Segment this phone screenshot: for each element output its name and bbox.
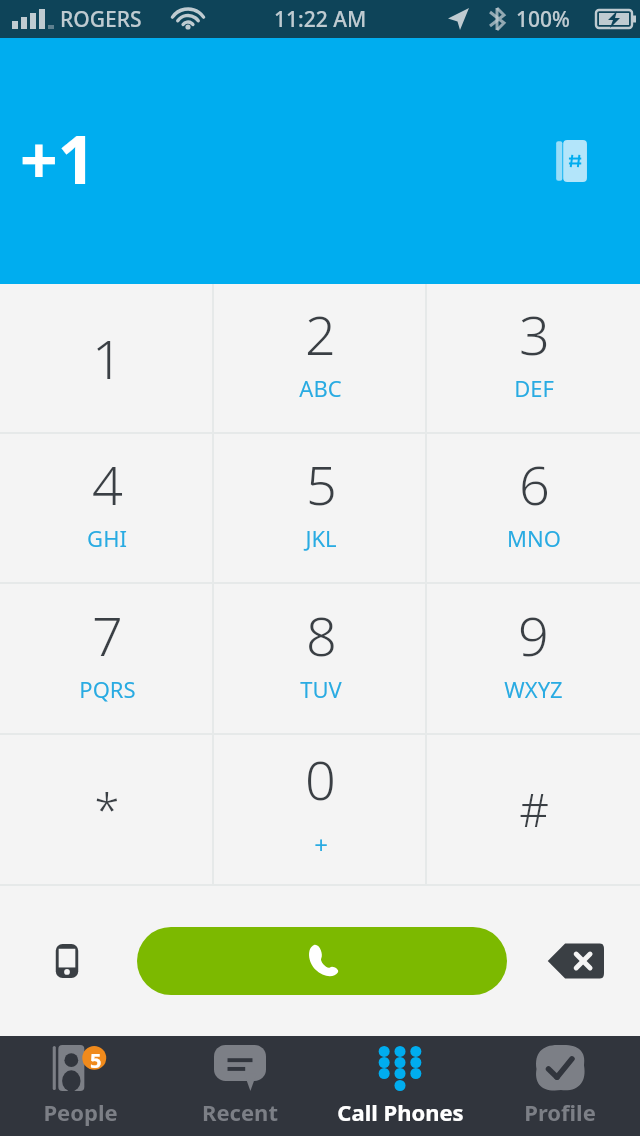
staticText: 4 bbox=[92, 447, 123, 521]
staticText: ROGERS bbox=[60, 5, 142, 34]
button[interactable]: Profile bbox=[480, 1036, 640, 1136]
staticText: Profile bbox=[524, 1097, 596, 1127]
button[interactable]: 5 bbox=[0, 1036, 160, 1136]
button[interactable]: Contacts keypad bbox=[540, 129, 604, 193]
staticText: 11:22 AM bbox=[274, 5, 367, 34]
button[interactable]: 9 bbox=[427, 584, 640, 733]
staticText: PQRS bbox=[79, 674, 136, 704]
button[interactable]: 4 bbox=[0, 434, 214, 582]
button[interactable]: Call Phones bbox=[320, 1036, 480, 1136]
button[interactable]: 8 bbox=[214, 584, 427, 733]
button[interactable]: 5 bbox=[214, 434, 427, 582]
staticText: 5 bbox=[90, 1047, 102, 1074]
button[interactable]: 3 bbox=[427, 284, 640, 432]
staticText: 6 bbox=[519, 447, 550, 521]
staticText: Call Phones bbox=[337, 1097, 464, 1127]
staticText: DEF bbox=[514, 373, 554, 403]
button[interactable]: # bbox=[427, 735, 640, 884]
staticText: +1 bbox=[20, 113, 96, 203]
staticText: 2 bbox=[305, 297, 336, 371]
staticText: 7 bbox=[92, 598, 123, 672]
staticText: 0 bbox=[305, 742, 336, 816]
staticText: # bbox=[519, 778, 549, 841]
staticText: JKL bbox=[305, 523, 337, 553]
button[interactable]: Recent bbox=[160, 1036, 320, 1136]
staticText: MNO bbox=[507, 523, 561, 553]
staticText: People bbox=[43, 1097, 118, 1127]
staticText: Recent bbox=[202, 1097, 278, 1127]
button[interactable]: 2 bbox=[214, 284, 427, 432]
button[interactable]: 0 bbox=[214, 735, 427, 884]
staticText: * bbox=[94, 778, 120, 841]
staticText: 9 bbox=[518, 598, 549, 672]
button[interactable]: Call bbox=[137, 927, 507, 995]
staticText: + bbox=[314, 828, 328, 861]
button[interactable]: Backspace bbox=[540, 926, 610, 996]
staticText: 1 bbox=[92, 321, 123, 395]
staticText: 5 bbox=[306, 447, 337, 521]
staticText: 100% bbox=[516, 5, 570, 34]
button[interactable]: 1 bbox=[0, 284, 214, 432]
staticText: WXYZ bbox=[504, 674, 563, 704]
staticText: TUV bbox=[300, 674, 342, 704]
staticText: GHI bbox=[87, 523, 127, 553]
button[interactable]: * bbox=[0, 735, 214, 884]
button[interactable]: 7 bbox=[0, 584, 214, 733]
staticText: 8 bbox=[306, 598, 337, 672]
staticText: 3 bbox=[519, 297, 550, 371]
button[interactable]: 6 bbox=[427, 434, 640, 582]
staticText: ABC bbox=[299, 373, 342, 403]
button[interactable]: Call mobile bbox=[32, 926, 102, 996]
